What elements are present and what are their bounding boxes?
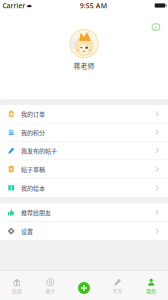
button[interactable]: 设置 xyxy=(0,222,168,240)
staticText: 9:55 AM xyxy=(80,1,107,10)
button[interactable]: 推荐给朋友 xyxy=(0,203,168,222)
staticText: 我的积分 xyxy=(21,128,45,137)
button[interactable]: 我的 xyxy=(134,270,168,300)
staticText: 帖子草稿 xyxy=(21,165,45,173)
button[interactable]: 帖子草稿 xyxy=(0,160,168,179)
staticText: 我发布的帖子 xyxy=(21,146,57,155)
button[interactable]: 校园 xyxy=(0,270,34,300)
staticText: 圈子 xyxy=(45,287,55,294)
staticText: 蒋老师 xyxy=(73,60,94,70)
button[interactable]: 我的绘本 xyxy=(0,179,168,197)
staticText: 设置 xyxy=(21,227,33,235)
button[interactable]: 我的订单 xyxy=(0,105,168,123)
staticText: 我的绘本 xyxy=(21,183,45,192)
button[interactable]: 写写 xyxy=(101,270,134,300)
button[interactable]: 我的积分 xyxy=(0,123,168,142)
staticText: 我的 xyxy=(146,287,156,294)
staticText: 写写 xyxy=(113,287,123,294)
staticText: Carrier xyxy=(2,1,25,10)
button[interactable]: 我发布的帖子 xyxy=(0,142,168,160)
staticText: 校园 xyxy=(12,287,22,294)
staticText: 我的订单 xyxy=(21,110,45,118)
staticText: 推荐给朋友 xyxy=(21,208,51,217)
button[interactable]: Messages xyxy=(152,11,168,31)
button[interactable]: 圈子 xyxy=(34,270,67,300)
button[interactable]: Create xyxy=(76,280,92,296)
